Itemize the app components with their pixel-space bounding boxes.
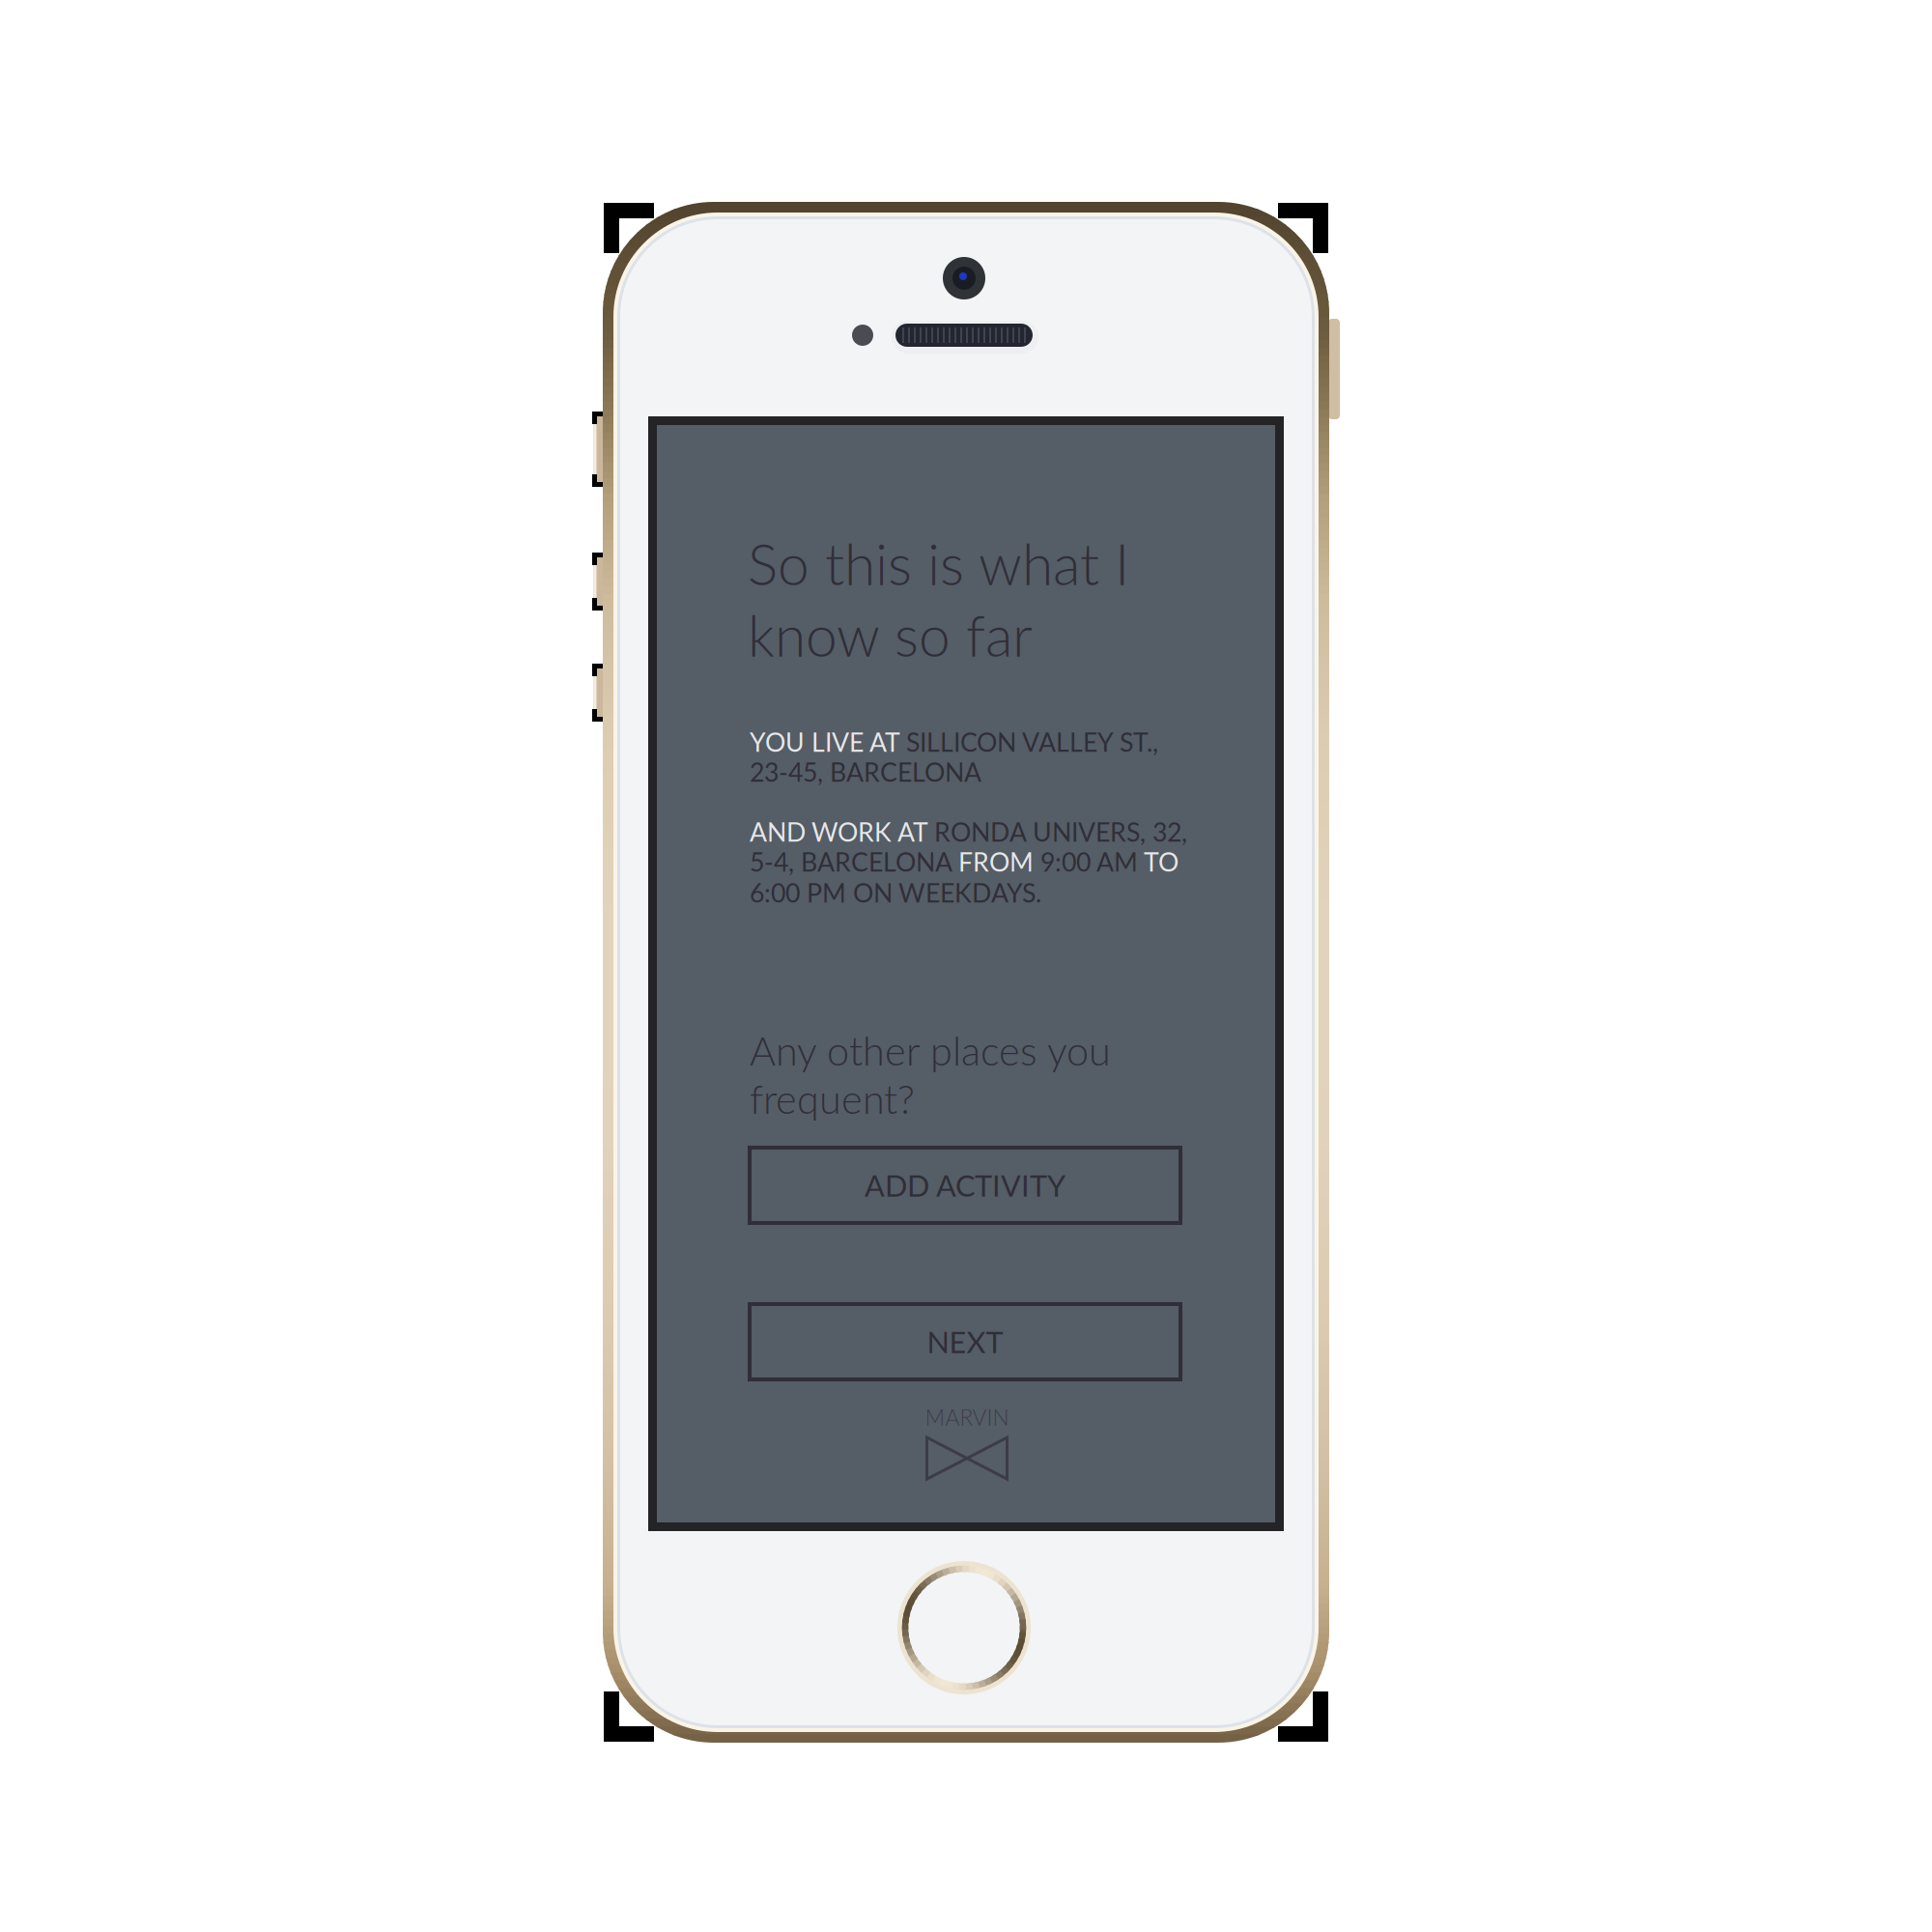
staticText: So this is what I [748,529,1129,597]
staticText: AND WORK AT RONDA UNIVERS, 32, [750,816,1187,847]
staticText: NEXT [927,1324,1003,1360]
staticText: 5-4, BARCELONA FROM 9:00 AM TO [750,846,1179,877]
staticText: 23-45, BARCELONA [750,756,981,787]
staticText: 6:00 PM ON WEEKDAYS. [750,877,1041,908]
staticText: know so far [748,601,1033,669]
staticText: ADD ACTIVITY [865,1168,1065,1203]
staticText: MARVIN [925,1404,1009,1430]
staticText: frequent? [750,1074,915,1122]
button[interactable]: NEXT [750,1304,1180,1379]
button[interactable]: ADD ACTIVITY [750,1148,1180,1223]
staticText: YOU LIVE AT SILLICON VALLEY ST., [750,726,1158,757]
staticText: Any other places you [750,1026,1111,1074]
